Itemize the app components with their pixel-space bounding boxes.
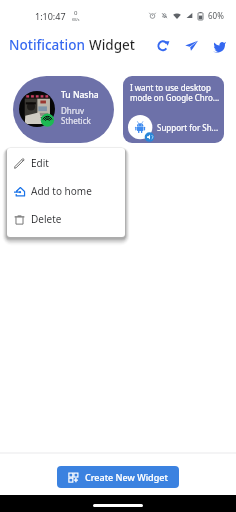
staticText: Support for Sh... — [157, 122, 219, 133]
staticText: Notification — [9, 36, 89, 54]
staticText: Dhruv Sthetick — [61, 105, 91, 126]
button[interactable]: Create New Widget — [57, 466, 179, 488]
staticText: Add to home — [31, 184, 92, 198]
staticText: 60% — [208, 10, 224, 21]
button[interactable]: I want to use desktop mode on Google Chr… — [123, 76, 224, 143]
staticText: Tu Nasha — [61, 89, 99, 101]
staticText: Widget — [89, 36, 136, 54]
staticText: Delete — [31, 212, 62, 226]
button[interactable]: Add to home — [7, 177, 125, 205]
staticText: 0 — [74, 9, 78, 17]
button[interactable]: Delete — [7, 205, 125, 233]
staticText: 1:10:47 — [35, 10, 66, 22]
staticText: Edit — [31, 156, 49, 170]
button[interactable]: Refresh — [154, 36, 173, 55]
button[interactable]: Telegram — [182, 36, 201, 55]
staticText: KB/s — [72, 17, 80, 22]
button[interactable]: Edit — [7, 149, 125, 177]
button[interactable]: Twitter — [210, 36, 229, 55]
button[interactable]: Tu Nasha — [13, 76, 114, 143]
staticText: Create New Widget — [85, 471, 168, 483]
staticText: I want to use desktop mode on Google Chr… — [130, 82, 220, 103]
